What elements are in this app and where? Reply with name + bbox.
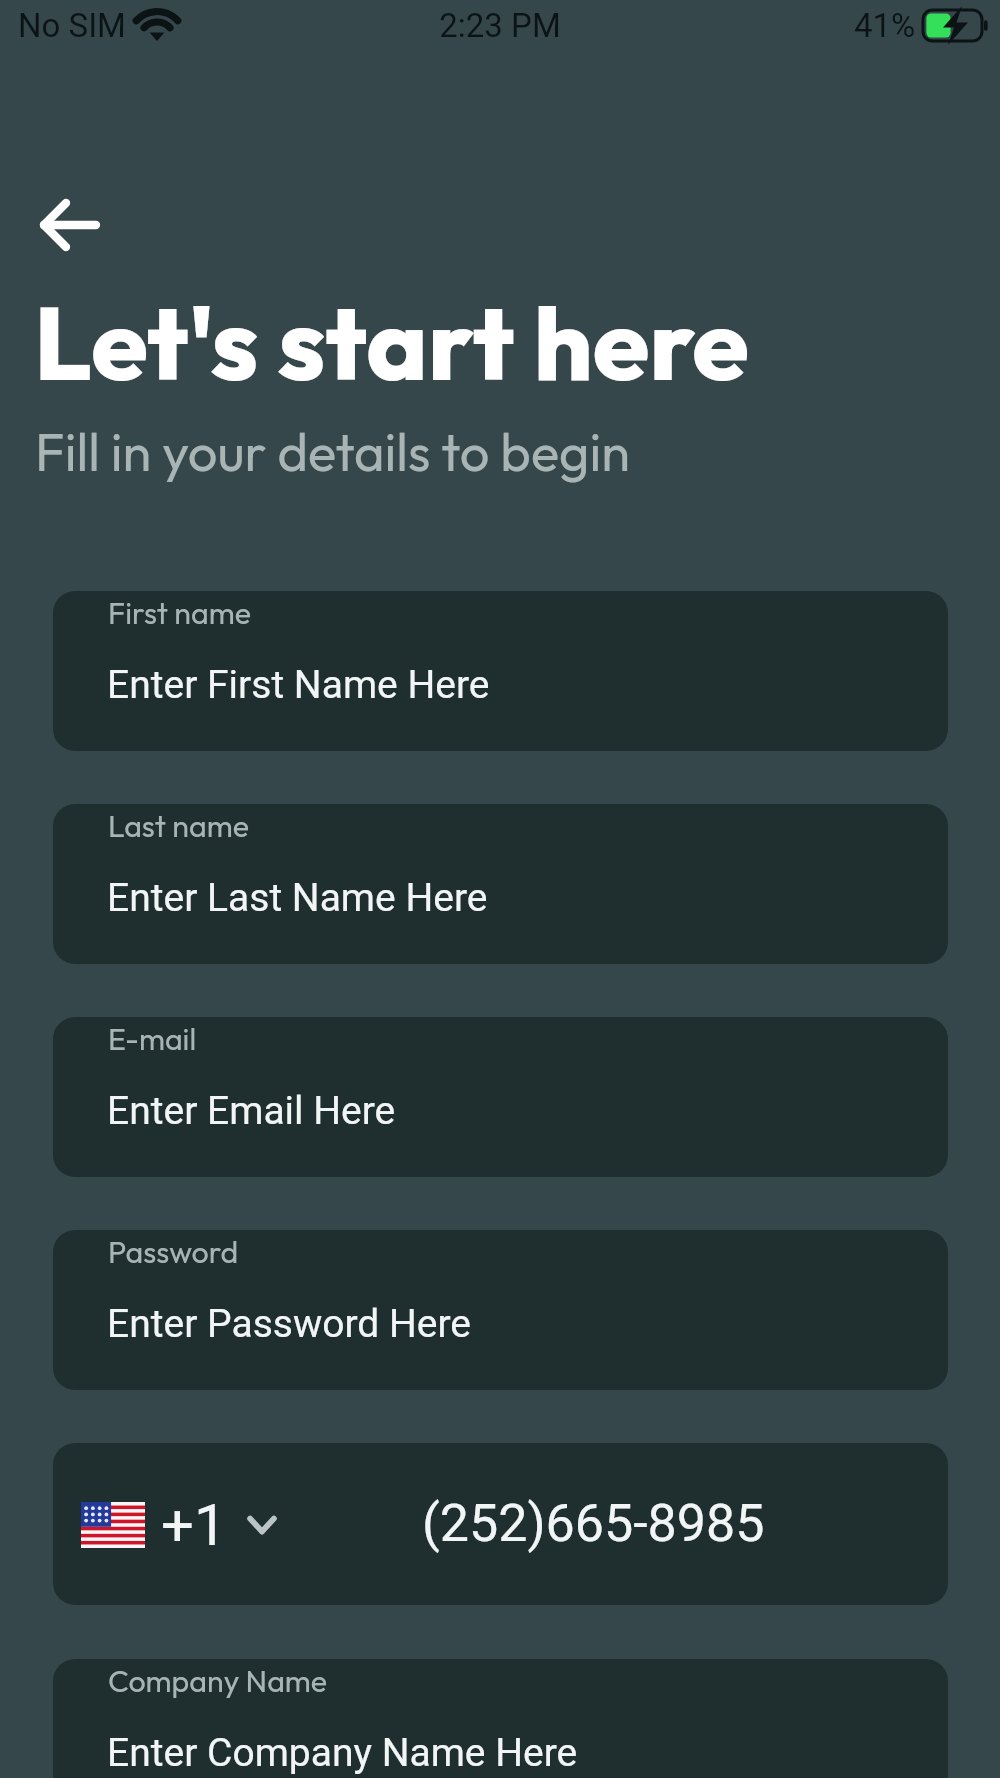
staticText: First name <box>108 594 251 632</box>
staticText: Password <box>108 1233 239 1271</box>
button[interactable]: Back <box>26 181 114 269</box>
button[interactable]: Select country calling code <box>81 1491 280 1559</box>
staticText: No SIM <box>18 6 126 45</box>
staticText: Enter First Name Here <box>107 662 490 708</box>
staticText: Last name <box>108 807 249 845</box>
button[interactable]: Company Name <box>53 1659 948 1778</box>
staticText: Enter Password Here <box>107 1301 472 1347</box>
staticText: +1 <box>161 1491 227 1559</box>
button[interactable]: E-mail <box>53 1017 948 1177</box>
staticText: Fill in your details to begin <box>35 418 630 484</box>
button[interactable]: Last name <box>53 804 948 964</box>
staticText: (252)665-8985 <box>422 1493 765 1554</box>
button[interactable]: Password <box>53 1230 948 1390</box>
other: Wi-Fi connected <box>137 12 179 42</box>
staticText: 41% <box>854 6 916 45</box>
staticText: Company Name <box>108 1662 328 1700</box>
staticText: Enter Last Name Here <box>107 875 488 921</box>
button[interactable]: First name <box>53 591 948 751</box>
staticText: Enter Email Here <box>107 1088 396 1134</box>
staticText: 2:23 PM <box>0 6 1000 45</box>
staticText: Enter Company Name Here <box>107 1730 578 1776</box>
other: Battery 41 percent, charging <box>921 8 989 44</box>
button[interactable]: (252)665-8985 <box>369 1459 929 1589</box>
staticText: E-mail <box>108 1020 197 1058</box>
staticText: Let's start here <box>34 277 749 406</box>
